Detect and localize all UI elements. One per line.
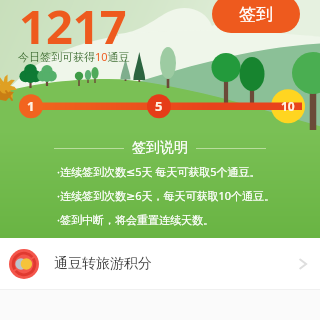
button[interactable]: 签到 (212, 0, 300, 33)
other: More (296, 257, 310, 271)
staticText: 签到 (239, 4, 273, 25)
button[interactable]: 通豆转旅游积分 (0, 238, 320, 289)
staticText: 今日签到可获得10通豆 (18, 49, 130, 64)
staticText: 通豆转旅游积分 (54, 255, 152, 273)
staticText: 10 (281, 98, 295, 114)
staticText: ·签到中断，将会重置连续天数。 (57, 212, 214, 227)
staticText: ·连续签到次数≥6天，每天可获取10个通豆。 (57, 188, 276, 203)
staticText: 1 (27, 97, 35, 115)
staticText: 1217 (19, 0, 127, 58)
staticText: ·连续签到次数≤5天 每天可获取5个通豆。 (57, 164, 261, 179)
staticText: 签到说明 (132, 139, 188, 157)
staticText: 5 (155, 97, 163, 115)
